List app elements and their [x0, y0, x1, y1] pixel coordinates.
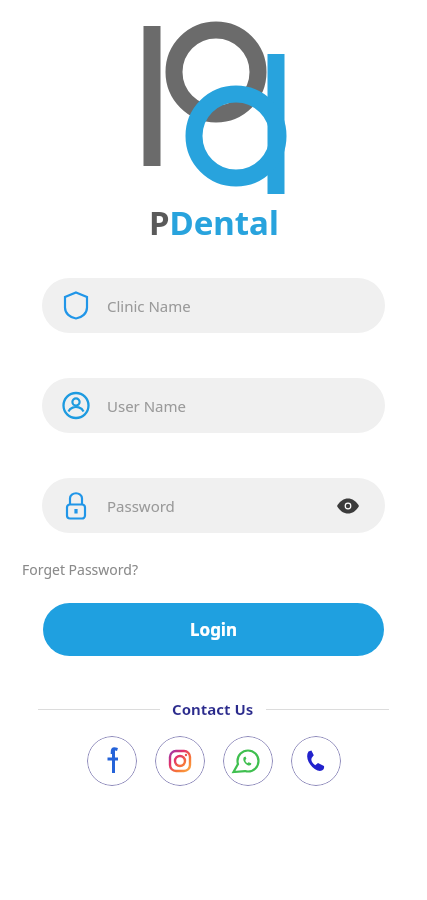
button[interactable]: Clinic Name: [42, 278, 385, 333]
button[interactable]: Show password: [333, 491, 363, 521]
button[interactable]: Login: [43, 603, 384, 656]
staticText: Password: [107, 496, 175, 516]
staticText: Forget Password?: [22, 560, 138, 579]
button[interactable]: Instagram: [155, 736, 205, 786]
button[interactable]: Facebook: [87, 736, 137, 786]
staticText: Clinic Name: [107, 296, 191, 316]
button[interactable]: Phone: [291, 736, 341, 786]
button[interactable]: WhatsApp: [223, 736, 273, 786]
staticText: PDental: [149, 200, 279, 245]
staticText: Login: [190, 618, 238, 641]
staticText: User Name: [107, 396, 187, 416]
button[interactable]: Password: [42, 478, 385, 533]
staticText: Contact Us: [172, 699, 254, 719]
button[interactable]: Forget Password?: [22, 556, 138, 583]
button[interactable]: User Name: [42, 378, 385, 433]
